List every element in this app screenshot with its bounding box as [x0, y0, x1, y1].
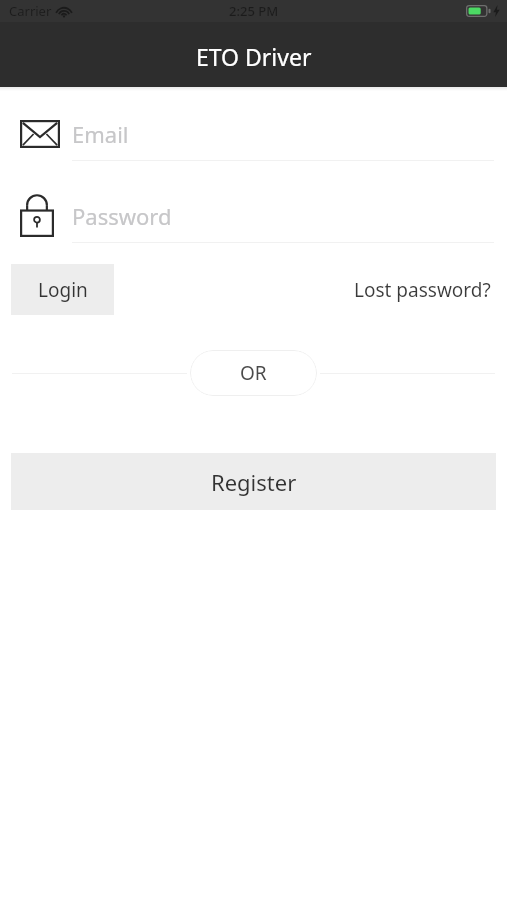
button[interactable]: Register [11, 453, 496, 510]
button[interactable]: Login [11, 264, 114, 315]
button[interactable]: Email field [0, 108, 507, 161]
staticText: Carrier [9, 2, 52, 20]
staticText: Lost password? [354, 277, 491, 303]
button[interactable]: OR [190, 350, 317, 396]
staticText: Login [38, 277, 88, 303]
staticText: Password [72, 201, 172, 231]
button[interactable]: Password field [0, 190, 507, 243]
staticText: Register [211, 467, 297, 497]
button[interactable]: Lost password? [351, 267, 494, 313]
staticText: 2:25 PM [229, 2, 279, 20]
staticText: OR [240, 360, 267, 386]
staticText: Email [72, 119, 129, 149]
staticText: ETO Driver [196, 41, 312, 72]
